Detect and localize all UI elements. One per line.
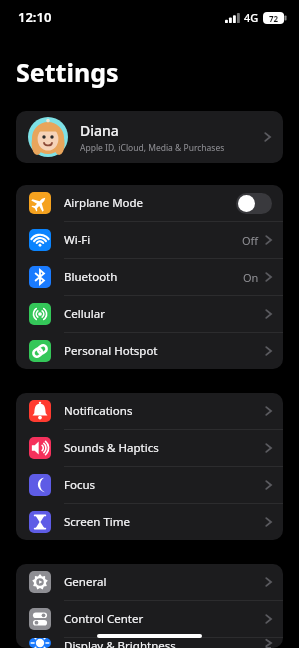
staticText: Notifications: [64, 403, 133, 419]
staticText: 12:10: [18, 8, 52, 26]
button[interactable]: Diana: [16, 111, 283, 163]
button[interactable]: General: [16, 564, 283, 600]
button[interactable]: Sounds & Haptics: [16, 430, 283, 466]
staticText: On: [243, 270, 259, 285]
button[interactable]: Airplane Mode: [16, 185, 283, 221]
button[interactable]: Focus: [16, 467, 283, 503]
staticText: Diana: [80, 121, 119, 140]
staticText: Settings: [16, 55, 119, 89]
staticText: Cellular: [64, 306, 105, 322]
button[interactable]: Bluetooth: [16, 259, 283, 295]
button[interactable]: Control Center: [16, 601, 283, 637]
button[interactable]: Cellular: [16, 296, 283, 332]
staticText: Screen Time: [64, 514, 131, 530]
staticText: Personal Hotspot: [64, 343, 158, 359]
staticText: Apple ID, iCloud, Media & Purchases: [80, 142, 225, 154]
staticText: General: [64, 574, 107, 590]
button[interactable]: Notifications: [16, 393, 283, 429]
staticText: Focus: [64, 477, 96, 493]
button[interactable]: Wi-Fi: [16, 222, 283, 258]
button[interactable]: Screen Time: [16, 504, 283, 540]
staticText: 72: [269, 13, 279, 24]
staticText: Control Center: [64, 611, 144, 627]
staticText: 4G: [244, 10, 259, 25]
staticText: Wi-Fi: [64, 232, 91, 248]
staticText: Display & Brightness: [64, 638, 176, 648]
staticText: Bluetooth: [64, 269, 118, 285]
staticText: Off: [242, 233, 259, 248]
button[interactable]: Airplane Mode toggle, off: [236, 193, 272, 214]
button[interactable]: Personal Hotspot: [16, 333, 283, 369]
button[interactable]: Display & Brightness: [16, 638, 283, 648]
staticText: Airplane Mode: [64, 195, 144, 211]
staticText: Sounds & Haptics: [64, 440, 159, 456]
